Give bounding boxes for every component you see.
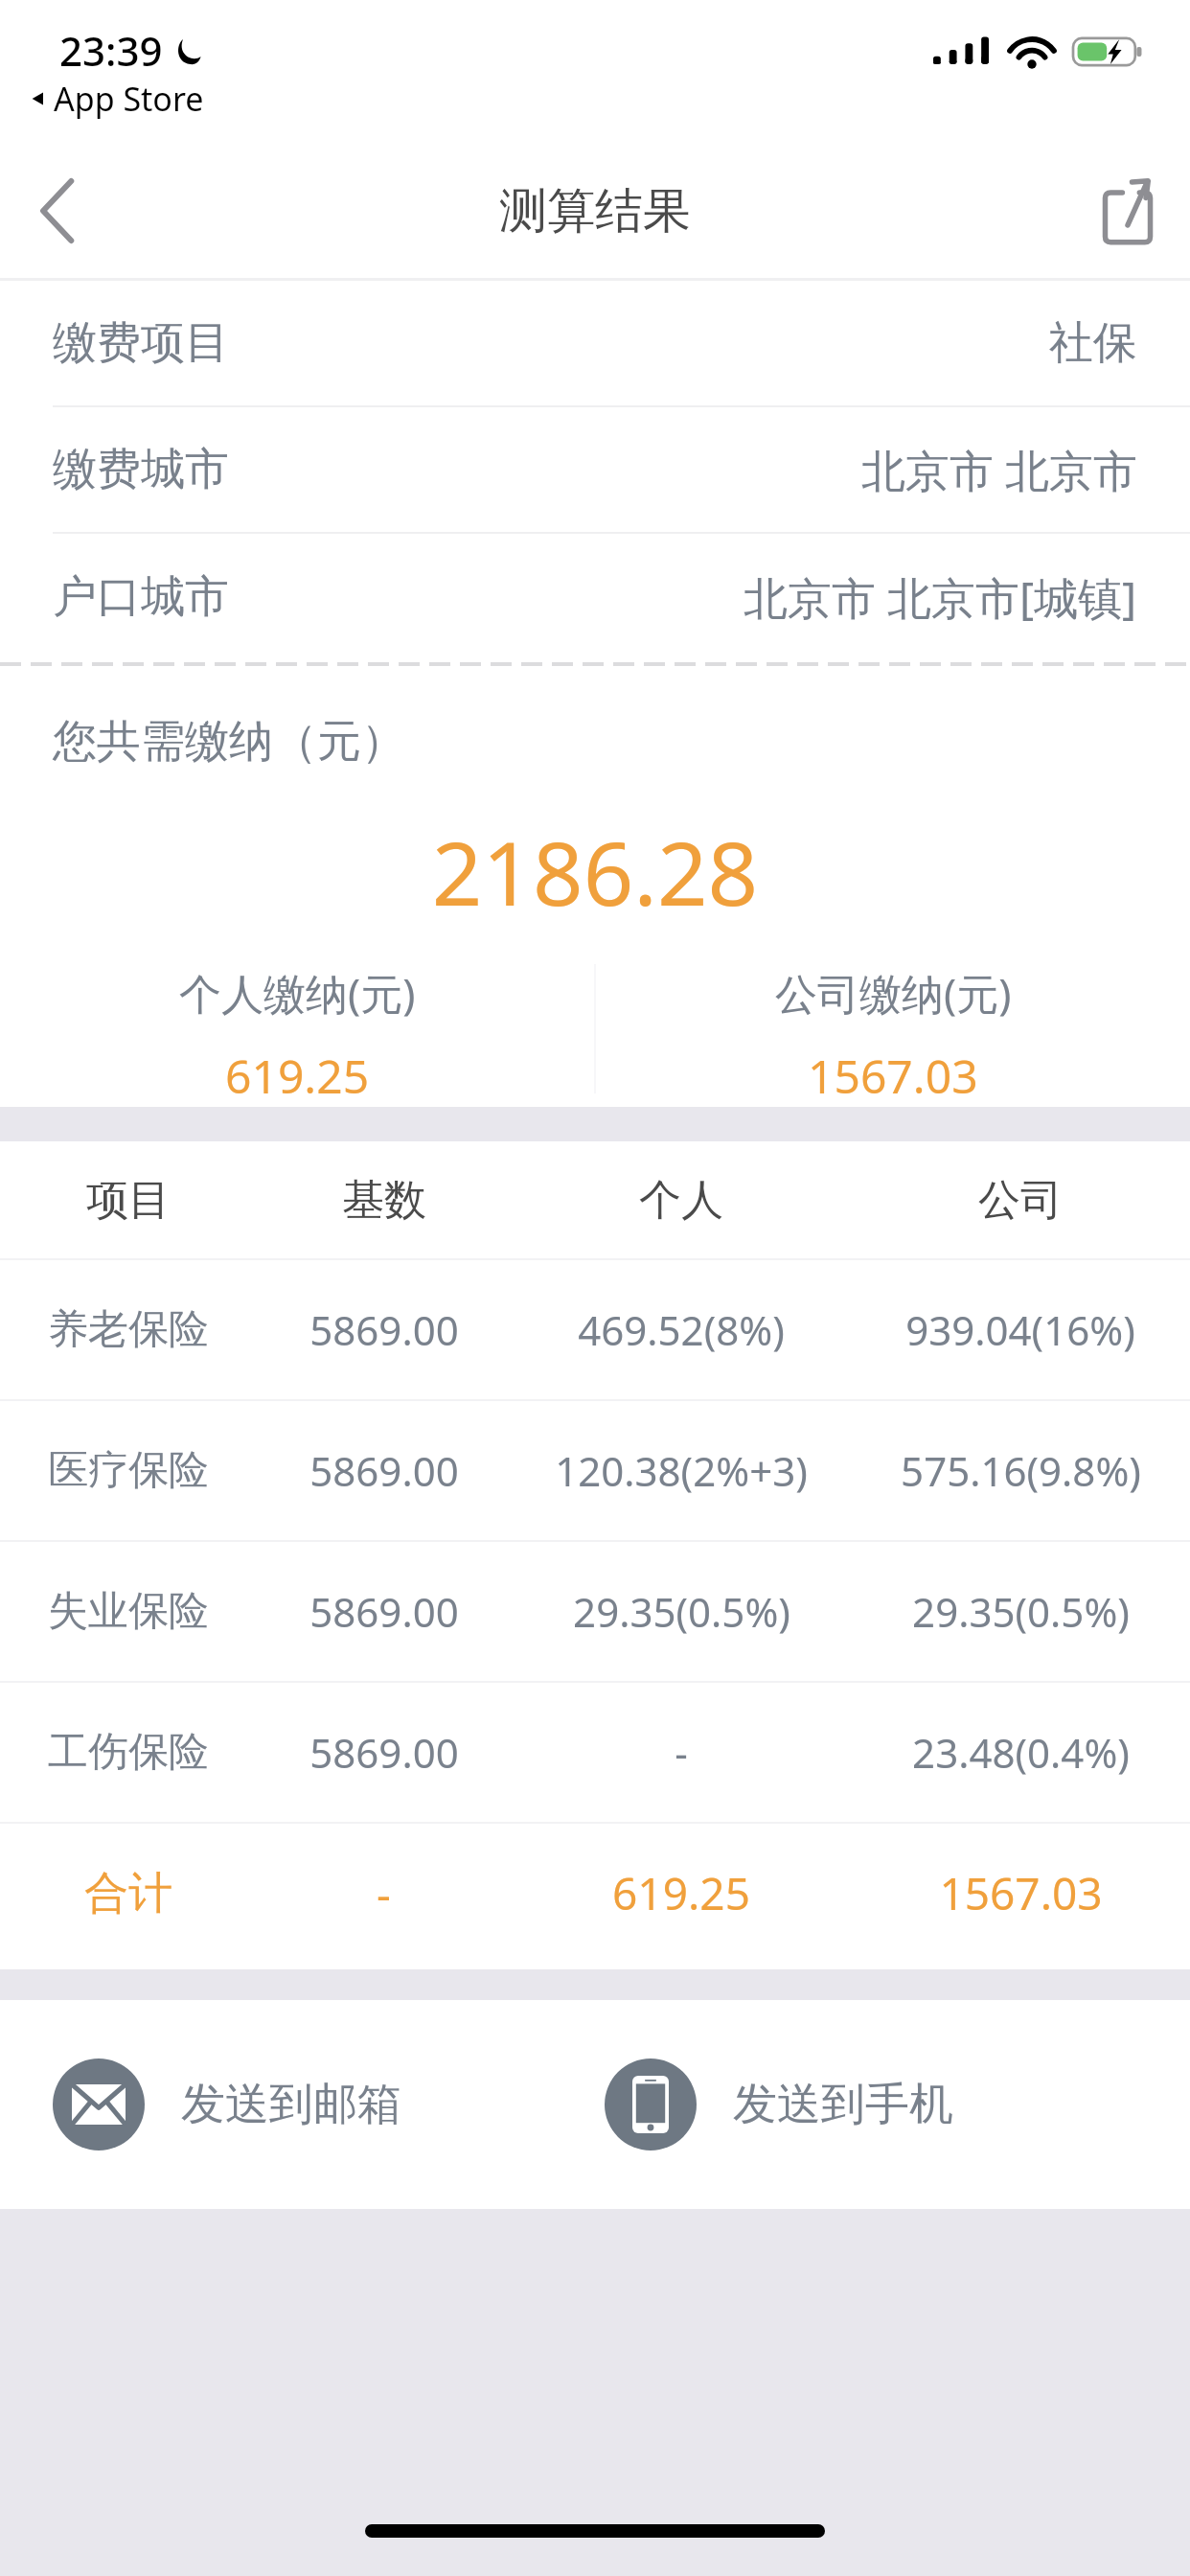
- staticText: 养老保险: [48, 1304, 209, 1355]
- staticText: 619.25: [612, 1863, 750, 1923]
- button[interactable]: App Store: [29, 77, 204, 121]
- button[interactable]: 发送到手机: [595, 2000, 1190, 2209]
- staticText: 医疗保险: [48, 1445, 209, 1496]
- button[interactable]: 公司缴纳(元): [596, 964, 1190, 1093]
- staticText: 失业保险: [48, 1586, 209, 1637]
- staticText: 5869.00: [309, 1443, 459, 1498]
- staticText: 发送到手机: [733, 2077, 953, 2132]
- staticText: 缴费项目: [53, 315, 229, 371]
- staticText: 公司缴纳(元): [775, 964, 1012, 1022]
- button[interactable]: 失业保险: [0, 1542, 1190, 1681]
- staticText: -: [675, 1725, 688, 1780]
- staticText: 29.35(0.5%): [573, 1584, 790, 1639]
- button[interactable]: 养老保险: [0, 1260, 1190, 1399]
- button[interactable]: Back: [0, 149, 115, 273]
- staticText: 469.52(8%): [578, 1302, 785, 1357]
- staticText: 23.48(0.4%): [912, 1725, 1130, 1780]
- button[interactable]: 缴费城市: [0, 407, 1190, 532]
- staticText: 北京市 北京市: [861, 440, 1137, 500]
- staticText: 23:39: [59, 23, 163, 78]
- staticText: 户口城市: [53, 569, 229, 625]
- button[interactable]: 合计: [0, 1824, 1190, 1963]
- staticText: 公司: [978, 1174, 1063, 1227]
- staticText: 您共需缴纳（元）: [53, 714, 405, 770]
- staticText: App Store: [54, 77, 204, 121]
- staticText: -: [377, 1863, 391, 1923]
- staticText: 基数: [342, 1174, 426, 1227]
- staticText: 项目: [86, 1174, 171, 1227]
- staticText: 2186.28: [0, 812, 1190, 931]
- button[interactable]: 户口城市: [0, 534, 1190, 660]
- staticText: 5869.00: [309, 1584, 459, 1639]
- staticText: 合计: [84, 1866, 172, 1921]
- staticText: 5869.00: [309, 1302, 459, 1357]
- staticText: 社保: [1049, 315, 1137, 371]
- staticText: 发送到邮箱: [181, 2077, 401, 2132]
- staticText: 120.38(2%+3): [555, 1443, 808, 1498]
- button[interactable]: 缴费项目: [0, 281, 1190, 405]
- staticText: 939.04(16%): [905, 1302, 1135, 1357]
- staticText: 1567.03: [808, 1045, 978, 1093]
- staticText: 测算结果: [499, 181, 691, 241]
- button[interactable]: 项目: [0, 1141, 1190, 1258]
- staticText: 1567.03: [939, 1863, 1103, 1923]
- button[interactable]: 医疗保险: [0, 1401, 1190, 1540]
- staticText: 619.25: [225, 1045, 370, 1093]
- staticText: 575.16(9.8%): [901, 1443, 1141, 1498]
- staticText: 工伤保险: [48, 1727, 209, 1778]
- button[interactable]: Share: [1065, 149, 1190, 273]
- button[interactable]: 工伤保险: [0, 1683, 1190, 1822]
- staticText: 个人: [639, 1174, 723, 1227]
- button[interactable]: 发送到邮箱: [0, 2000, 595, 2209]
- staticText: 北京市 北京市[城镇]: [744, 567, 1137, 628]
- button[interactable]: 个人缴纳(元): [0, 964, 594, 1093]
- staticText: 5869.00: [309, 1725, 459, 1780]
- staticText: 29.35(0.5%): [912, 1584, 1130, 1639]
- staticText: 个人缴纳(元): [179, 964, 416, 1022]
- staticText: 缴费城市: [53, 442, 229, 497]
